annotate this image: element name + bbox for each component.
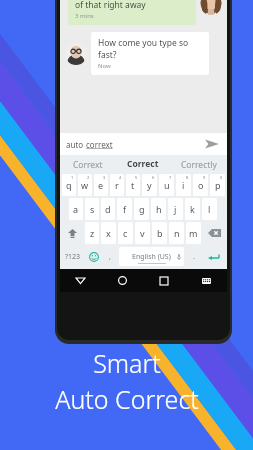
staticText: English (US) — [132, 252, 171, 262]
button[interactable]: , — [102, 247, 117, 266]
staticText: 2 — [87, 175, 90, 180]
staticText: h — [156, 203, 162, 215]
button[interactable]: i — [176, 174, 191, 196]
button[interactable]: Shift — [61, 222, 84, 244]
staticText: r — [115, 179, 119, 191]
button[interactable]: h — [151, 198, 166, 220]
button[interactable]: f — [117, 198, 132, 220]
button[interactable]: Corrext — [60, 155, 115, 174]
button[interactable]: x — [101, 222, 116, 244]
staticText: Smart — [93, 346, 161, 380]
staticText: 3 — [103, 175, 106, 180]
staticText: u — [164, 179, 170, 191]
staticText: k — [190, 203, 195, 215]
button[interactable]: z — [85, 222, 99, 244]
button[interactable]: Correct — [115, 155, 171, 174]
staticText: t — [131, 179, 135, 191]
staticText: Corrext — [73, 159, 103, 171]
staticText: g — [139, 203, 145, 215]
button[interactable]: k — [185, 198, 200, 220]
staticText: 5 — [135, 175, 138, 180]
staticText: Correctly — [181, 159, 217, 171]
staticText: 7 — [169, 175, 172, 180]
staticText: m — [189, 227, 198, 239]
staticText: 8 — [186, 175, 189, 180]
staticText: 4 — [119, 175, 122, 180]
staticText: j — [174, 203, 177, 215]
button[interactable]: Switch keyboard — [185, 269, 227, 292]
staticText: corrext — [86, 139, 113, 150]
button[interactable]: Back — [60, 269, 101, 292]
button[interactable]: Enter — [201, 247, 226, 266]
staticText: s — [90, 203, 95, 215]
button[interactable]: j — [168, 198, 183, 220]
staticText: d — [105, 203, 111, 215]
button[interactable]: q — [62, 174, 76, 196]
button[interactable]: s — [85, 198, 99, 220]
button[interactable]: ?123 — [61, 247, 85, 266]
button[interactable]: v — [135, 222, 150, 244]
staticText: 6 — [152, 175, 155, 180]
button[interactable]: p — [210, 174, 225, 196]
staticText: f — [123, 203, 127, 215]
staticText: ?123 — [65, 252, 81, 262]
button[interactable]: t — [126, 174, 140, 196]
staticText: y — [147, 179, 152, 191]
button[interactable]: w — [78, 174, 92, 196]
button[interactable]: . — [186, 247, 201, 266]
button[interactable]: o — [193, 174, 208, 196]
button[interactable]: g — [134, 198, 149, 220]
button[interactable]: d — [101, 198, 115, 220]
button[interactable]: m — [186, 222, 201, 244]
button[interactable]: l — [202, 198, 217, 220]
button[interactable]: n — [169, 222, 184, 244]
staticText: z — [90, 227, 95, 239]
button[interactable]: Correctly — [171, 155, 227, 174]
staticText: How come you type so fast? — [98, 37, 202, 61]
button[interactable]: Home — [101, 269, 143, 292]
staticText: n — [174, 227, 180, 239]
button[interactable]: English (US) — [119, 247, 184, 266]
staticText: Now — [98, 62, 111, 70]
staticText: w — [81, 179, 89, 191]
staticText: auto — [66, 139, 86, 150]
button[interactable]: Recent apps — [143, 269, 185, 292]
button[interactable]: y — [142, 174, 157, 196]
button[interactable]: Send — [203, 135, 221, 153]
staticText: l — [208, 203, 211, 215]
staticText: 9 — [203, 175, 206, 180]
staticText: c — [123, 227, 128, 239]
button[interactable]: Emoji — [85, 247, 102, 266]
button[interactable]: e — [94, 174, 108, 196]
staticText: v — [140, 227, 145, 239]
staticText: . — [193, 252, 195, 262]
staticText: 3 mins — [75, 12, 94, 20]
button[interactable]: c — [118, 222, 133, 244]
staticText: b — [157, 227, 163, 239]
staticText: , — [109, 252, 111, 262]
button[interactable]: Backspace — [202, 222, 226, 244]
staticText: q — [66, 179, 72, 191]
button[interactable]: u — [159, 174, 174, 196]
staticText: i — [182, 179, 185, 191]
button[interactable]: r — [110, 174, 124, 196]
button[interactable]: a — [69, 198, 83, 220]
button[interactable]: How come you type so fast? — [91, 32, 209, 75]
staticText: p — [215, 179, 221, 191]
button[interactable]: b — [152, 222, 167, 244]
button[interactable]: No problem I can take care of that right… — [68, 0, 196, 25]
staticText: Auto Correct — [55, 382, 199, 416]
staticText: No problem I can take care of that right… — [75, 0, 189, 10]
staticText: Correct — [127, 158, 159, 170]
staticText: 0 — [220, 175, 223, 180]
staticText: o — [198, 179, 204, 191]
staticText: e — [98, 179, 104, 191]
staticText: 1 — [71, 175, 74, 180]
staticText: x — [106, 227, 111, 239]
staticText: a — [73, 203, 79, 215]
